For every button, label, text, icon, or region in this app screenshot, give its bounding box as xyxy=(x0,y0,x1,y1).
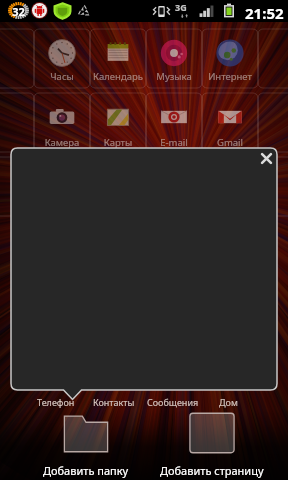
button[interactable] xyxy=(146,102,202,133)
staticText: Часы xyxy=(34,70,90,83)
staticText: Дом xyxy=(219,396,238,408)
staticText: Добавить папку xyxy=(43,463,129,478)
staticText: Сообщения xyxy=(147,396,199,408)
button[interactable] xyxy=(34,38,90,69)
button[interactable]: Добавить папку xyxy=(20,412,152,478)
staticText: Камера xyxy=(34,136,90,149)
button[interactable]: Сообщения xyxy=(142,394,204,409)
button[interactable]: Контакты xyxy=(88,394,140,409)
button[interactable] xyxy=(90,38,146,69)
staticText: 32 xyxy=(12,4,25,19)
staticText: Календарь xyxy=(90,70,146,83)
button[interactable] xyxy=(90,102,146,133)
button[interactable] xyxy=(146,38,202,69)
staticText: Музыка xyxy=(146,70,202,83)
staticText: 3G xyxy=(175,1,187,13)
staticText: Контакты xyxy=(93,396,135,408)
staticText: Телефон xyxy=(37,396,75,408)
button[interactable] xyxy=(202,38,258,69)
button[interactable] xyxy=(202,102,258,133)
staticText: E-mail xyxy=(146,136,202,149)
staticText: Карты xyxy=(90,136,146,149)
staticText: 21:52 xyxy=(245,3,284,23)
button[interactable]: Close xyxy=(258,150,275,167)
staticText: Интернет xyxy=(202,70,258,83)
button[interactable]: Дом xyxy=(214,394,243,409)
button[interactable]: Добавить страницу xyxy=(148,412,276,478)
button[interactable] xyxy=(34,102,90,133)
staticText: Добавить страницу xyxy=(160,463,264,478)
button[interactable]: Телефон xyxy=(32,394,80,409)
staticText: Gmail xyxy=(202,136,258,149)
